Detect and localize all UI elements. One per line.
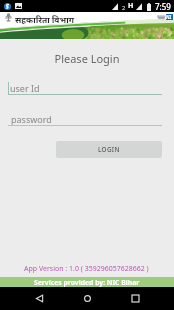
staticText: 7:59 [155, 1, 171, 12]
staticText: NIC [166, 14, 173, 20]
button[interactable]: password [8, 112, 162, 126]
button[interactable]: Recent apps [123, 287, 147, 310]
staticText: App Version : 1.0 ( 359296057628662 ) [24, 264, 149, 274]
staticText: password [11, 113, 52, 125]
staticText: Services provided by: NIC Bihar [34, 278, 140, 287]
button[interactable]: Home [75, 287, 99, 310]
staticText: सहकारिता विभाग [15, 14, 74, 26]
staticText: 2 [122, 4, 126, 11]
button[interactable]: Back [27, 287, 51, 310]
staticText: LOGIN [98, 145, 120, 154]
button[interactable]: user Id [8, 81, 162, 95]
staticText: Please Login [0, 51, 174, 66]
staticText: user Id [10, 82, 40, 94]
button[interactable]: LOGIN [56, 141, 162, 158]
staticText: H [128, 1, 134, 11]
